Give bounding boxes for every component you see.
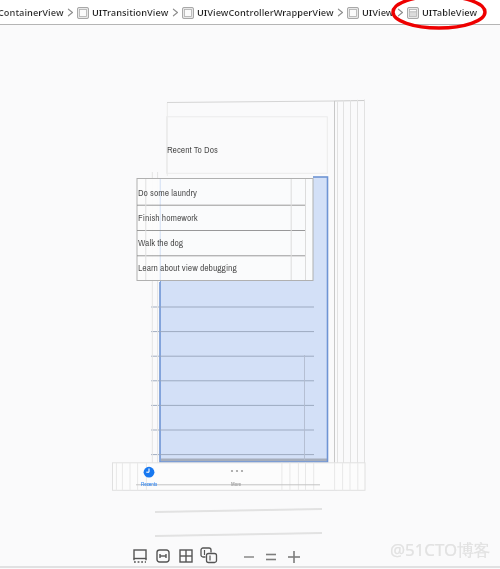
button[interactable]: Show constraints bbox=[155, 548, 173, 566]
button[interactable]: Learn about view debugging bbox=[137, 255, 313, 280]
staticText: ContainerView bbox=[0, 6, 64, 19]
staticText: Learn about view debugging bbox=[138, 261, 237, 274]
button[interactable]: Finish homework bbox=[137, 205, 313, 230]
button[interactable]: Grid bbox=[178, 548, 196, 566]
button[interactable]: Recents bbox=[138, 464, 162, 489]
staticText: @51CTO博客 bbox=[390, 538, 491, 561]
staticText: UIView bbox=[362, 6, 394, 19]
staticText: Walk the dog bbox=[138, 236, 184, 249]
button[interactable]: Show clipped content bbox=[132, 548, 150, 566]
staticText: Do some laundry bbox=[138, 186, 197, 199]
button[interactable]: View mode bbox=[199, 546, 221, 568]
button[interactable]: Walk the dog bbox=[137, 230, 313, 255]
button[interactable]: Zoom out bbox=[241, 548, 259, 566]
staticText: Finish homework bbox=[138, 211, 198, 224]
button[interactable]: Actual size bbox=[263, 548, 281, 566]
button[interactable]: Zoom in bbox=[285, 546, 305, 566]
staticText: Recents bbox=[141, 480, 158, 487]
staticText: UITransitionView bbox=[92, 6, 169, 19]
button[interactable]: More bbox=[226, 464, 250, 489]
staticText: Recent To Dos bbox=[167, 143, 218, 156]
staticText: UITableView bbox=[422, 6, 478, 19]
staticText: UIViewControllerWrapperView bbox=[197, 6, 334, 19]
staticText: More bbox=[231, 480, 242, 487]
button[interactable]: Do some laundry bbox=[137, 180, 313, 205]
